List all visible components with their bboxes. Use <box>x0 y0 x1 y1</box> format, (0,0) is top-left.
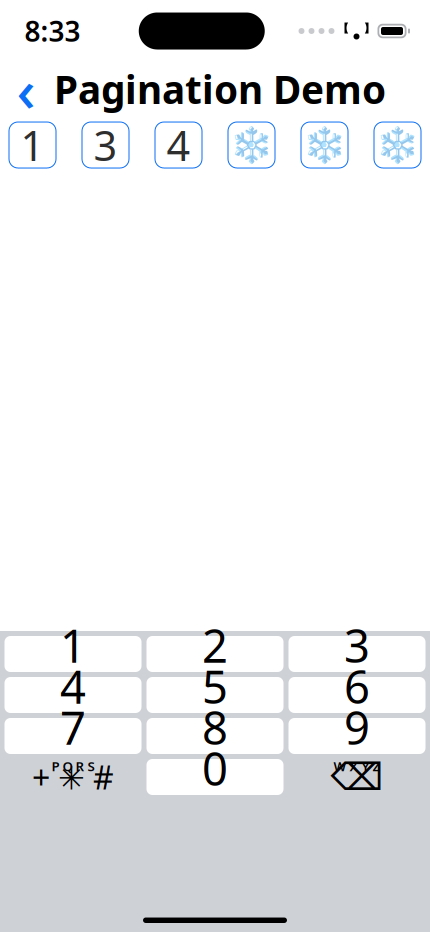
staticText: T U V <box>199 757 231 775</box>
staticText: W X Y Z <box>333 757 380 775</box>
staticText: 5 <box>202 656 228 716</box>
staticText: 9 <box>344 697 370 757</box>
button[interactable]: 1 <box>4 636 141 672</box>
staticText: ‹ <box>16 50 35 128</box>
staticText: 8 <box>202 697 228 757</box>
staticText: M N O <box>337 716 376 734</box>
staticText: G H I <box>57 716 88 734</box>
staticText: + ✳ # <box>32 756 114 798</box>
staticText: 3 <box>93 118 117 172</box>
staticText: 1 <box>60 615 86 675</box>
button[interactable]: Delete <box>288 759 425 795</box>
button[interactable]: 0 <box>146 759 283 795</box>
staticText: ⌫ <box>330 756 383 798</box>
button[interactable]: 4 <box>4 677 141 713</box>
staticText: 7 <box>60 697 86 757</box>
staticText: P Q R S <box>51 757 94 775</box>
button[interactable]: 4 <box>155 122 202 168</box>
button[interactable]: ❄️ <box>301 122 348 168</box>
staticText: 3 <box>344 615 370 675</box>
button[interactable]: 3 <box>288 636 425 672</box>
button[interactable]: 7 <box>4 718 141 754</box>
button[interactable]: 9 <box>288 718 425 754</box>
staticText: 2 <box>202 615 228 675</box>
button[interactable]: 3 <box>82 122 129 168</box>
staticText: Pagination Demo <box>54 63 386 115</box>
staticText: 4 <box>166 118 190 172</box>
staticText: 0 <box>202 738 228 798</box>
staticText: ❄️ <box>376 125 419 165</box>
button[interactable]: 6 <box>288 677 425 713</box>
button[interactable]: ❄️ <box>228 122 275 168</box>
button[interactable]: 8 <box>146 718 283 754</box>
button[interactable]: ❄️ <box>374 122 421 168</box>
staticText: D E F <box>342 675 372 693</box>
staticText: ❄️ <box>230 125 273 165</box>
staticText: 1 <box>20 118 44 172</box>
staticText: A B C <box>198 675 231 693</box>
staticText: 6 <box>344 656 370 716</box>
button[interactable]: 2 <box>146 636 283 672</box>
staticText: 8:33 <box>24 12 80 50</box>
staticText: J K L <box>202 716 228 734</box>
staticText: 4 <box>60 656 86 716</box>
button[interactable]: Symbols <box>4 759 141 795</box>
button[interactable]: 5 <box>146 677 283 713</box>
button[interactable]: 1 <box>9 122 56 168</box>
staticText: ❄️ <box>303 125 346 165</box>
button[interactable]: Back <box>6 67 46 111</box>
